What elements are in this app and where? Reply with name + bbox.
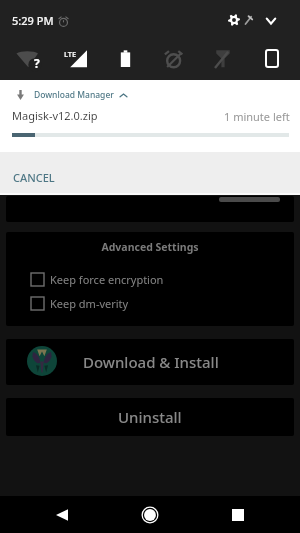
- staticText: Uninstall: [118, 407, 182, 427]
- staticText: Keep force encryption: [50, 272, 164, 287]
- staticText: LTE: [64, 49, 77, 59]
- button[interactable]: Settings: [228, 14, 240, 26]
- staticText: Magisk-v12.0.zip: [12, 108, 98, 123]
- button[interactable]: Back: [44, 496, 80, 533]
- button[interactable]: Keep force encryption: [6, 268, 294, 290]
- staticText: 1 minute left: [224, 109, 290, 124]
- button[interactable]: CANCEL: [0, 152, 300, 193]
- staticText: ?: [34, 55, 40, 71]
- staticText: Keep dm-verity: [50, 296, 129, 311]
- button[interactable]: Recent apps: [220, 496, 256, 533]
- button[interactable]: Home: [132, 496, 168, 533]
- button[interactable]: Uninstall: [6, 398, 294, 436]
- button[interactable]: Download & Install: [6, 339, 294, 385]
- staticText: 5:29 PM: [12, 13, 54, 28]
- button[interactable]: Expand: [266, 16, 276, 26]
- staticText: Download Manager: [34, 89, 114, 101]
- staticText: Advanced Settings: [6, 240, 294, 254]
- staticText: CANCEL: [13, 170, 55, 185]
- button[interactable]: Keep dm-verity: [6, 292, 294, 314]
- staticText: Download & Install: [83, 352, 219, 372]
